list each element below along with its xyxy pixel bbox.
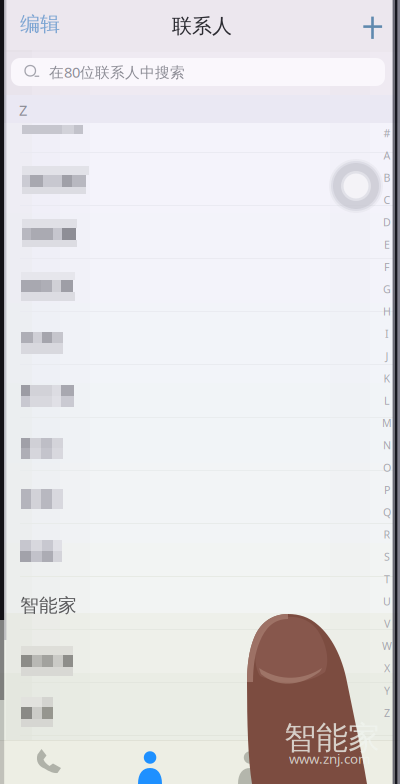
button[interactable]: 联系人: [100, 741, 200, 784]
staticText: Y: [384, 683, 390, 698]
staticText: U: [383, 594, 391, 608]
staticText: N: [383, 438, 391, 452]
staticText: T: [384, 572, 390, 586]
staticText: 智能家: [284, 718, 380, 758]
button[interactable]: [0, 311, 400, 364]
staticText: L: [384, 393, 390, 408]
button[interactable]: 电话: [0, 741, 100, 784]
staticText: Z: [19, 100, 27, 120]
staticText: S: [384, 550, 390, 564]
staticText: X: [384, 661, 390, 675]
staticText: G: [383, 282, 391, 296]
staticText: D: [383, 215, 391, 229]
staticText: A: [383, 148, 390, 162]
button[interactable]: 在80位联系人中搜索: [11, 58, 385, 86]
staticText: F: [384, 260, 390, 274]
staticText: K: [383, 371, 390, 385]
staticText: E: [384, 237, 390, 252]
staticText: 编辑: [20, 12, 60, 36]
staticText: H: [383, 304, 391, 318]
staticText: 智能家: [20, 594, 77, 617]
button[interactable]: 辅助触控: [333, 162, 383, 214]
button[interactable]: [0, 364, 400, 417]
staticText: 在80位联系人中搜索: [49, 62, 185, 82]
button[interactable]: 智能家: [0, 576, 400, 629]
button[interactable]: 编辑: [20, 7, 84, 41]
button[interactable]: [0, 629, 400, 682]
staticText: P: [384, 483, 390, 497]
button[interactable]: [0, 99, 400, 152]
button[interactable]: 键盘: [300, 741, 400, 784]
button[interactable]: [0, 470, 400, 523]
button[interactable]: [0, 417, 400, 470]
button[interactable]: 群组: [200, 741, 300, 784]
staticText: M: [382, 416, 392, 430]
staticText: #: [383, 126, 390, 140]
button[interactable]: [0, 205, 400, 258]
staticText: O: [383, 460, 391, 475]
staticText: R: [383, 527, 390, 541]
button[interactable]: [0, 682, 400, 735]
staticText: C: [383, 193, 390, 207]
staticText: Z: [384, 706, 390, 720]
staticText: I: [385, 327, 389, 341]
staticText: V: [384, 616, 390, 631]
staticText: B: [383, 170, 390, 185]
staticText: 联系人: [172, 14, 232, 38]
staticText: Q: [383, 505, 391, 519]
button[interactable]: [0, 152, 400, 205]
staticText: www.znj.com: [289, 750, 370, 767]
button[interactable]: [0, 258, 400, 311]
button[interactable]: 添加联系人: [353, 7, 393, 47]
staticText: J: [385, 349, 388, 363]
button[interactable]: 索引: [375, 133, 399, 733]
button[interactable]: [0, 523, 400, 576]
staticText: W: [382, 639, 392, 653]
